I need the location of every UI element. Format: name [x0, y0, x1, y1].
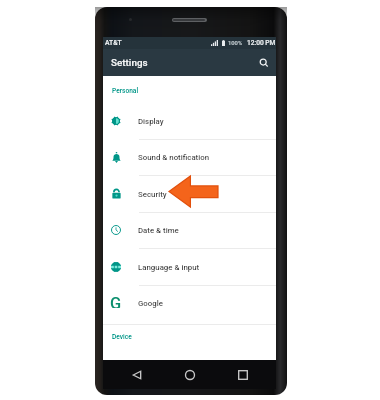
staticText: Google: [138, 299, 163, 308]
staticText: Display: [138, 117, 164, 126]
staticText: 100%: [228, 40, 243, 47]
staticText: Sound & notification: [138, 153, 210, 162]
button[interactable]: Security: [103, 176, 276, 213]
staticText: Device: [112, 333, 132, 341]
button[interactable]: Recent apps: [229, 360, 257, 389]
staticText: Date & time: [138, 226, 179, 235]
button[interactable]: G: [103, 285, 276, 322]
button[interactable]: Search: [255, 54, 273, 72]
staticText: 12:00 PM: [247, 39, 276, 47]
button[interactable]: Language & input: [103, 249, 276, 286]
staticText: AT&T: [105, 39, 122, 47]
button[interactable]: Back: [123, 360, 151, 389]
button[interactable]: Home: [176, 360, 204, 389]
button[interactable]: Date & time: [103, 212, 276, 249]
button: Device: [112, 332, 132, 342]
staticText: G: [110, 294, 122, 308]
staticText: Security: [138, 190, 167, 199]
staticText: Settings: [111, 57, 148, 69]
button[interactable]: Display: [103, 103, 276, 140]
staticText: Language & input: [138, 263, 200, 272]
staticText: Personal: [112, 87, 139, 95]
button: Personal: [112, 86, 139, 96]
button[interactable]: Sound & notification: [103, 139, 276, 176]
